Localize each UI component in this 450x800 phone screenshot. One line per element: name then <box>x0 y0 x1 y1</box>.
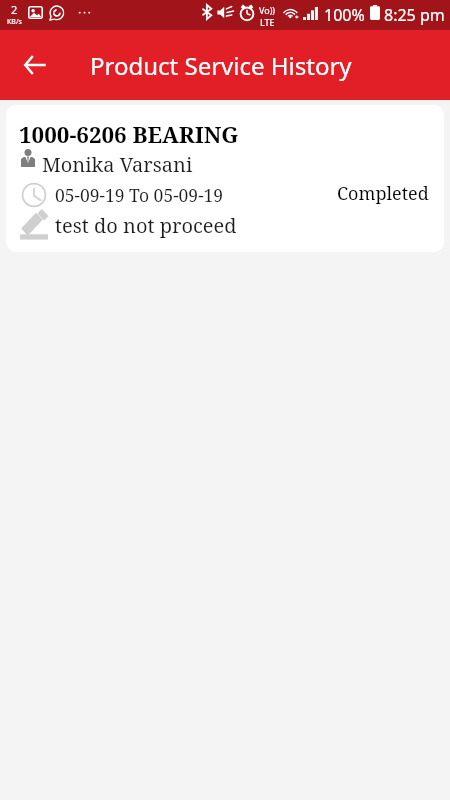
staticText: Product Service History <box>90 49 352 82</box>
staticText: 1000-6206 BEARING <box>19 119 239 149</box>
staticText: 05-09-19 To 05-09-19 <box>55 183 224 207</box>
button[interactable]: 1000-6206 BEARING <box>6 105 444 252</box>
staticText: 8:25 pm <box>384 4 445 26</box>
staticText: test do not proceed <box>55 212 237 239</box>
staticText: 2 <box>11 2 18 17</box>
staticText: Vo)) <box>259 4 276 16</box>
staticText: 100% <box>324 4 365 26</box>
staticText: Completed <box>337 181 429 206</box>
button[interactable]: Back <box>11 41 59 89</box>
staticText: LTE <box>260 16 275 28</box>
staticText: Monika Varsani <box>42 151 193 178</box>
staticText: KB/s <box>7 17 22 27</box>
